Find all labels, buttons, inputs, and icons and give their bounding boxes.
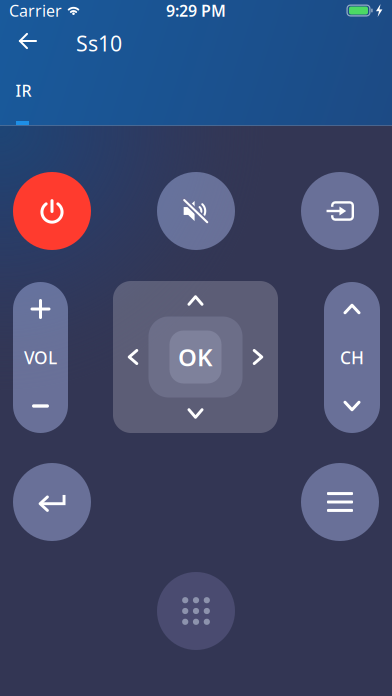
button[interactable]: Power: [13, 172, 91, 250]
staticText: OK: [178, 341, 213, 373]
staticText: Carrier: [9, 0, 62, 21]
button[interactable]: Number pad: [157, 572, 235, 650]
staticText: IR: [15, 80, 31, 101]
button[interactable]: Input source: [301, 172, 379, 250]
button[interactable]: IR: [0, 0, 46, 125]
button[interactable]: Down: [168, 394, 222, 432]
button[interactable]: Volume up: [13, 282, 68, 336]
button[interactable]: Channel down: [324, 379, 380, 433]
staticText: 9:29 PM: [166, 0, 226, 21]
button[interactable]: Menu: [301, 463, 379, 541]
button[interactable]: Back: [13, 463, 91, 541]
button[interactable]: Mute: [157, 172, 235, 250]
staticText: Ss10: [76, 29, 122, 57]
staticText: VOL: [24, 346, 57, 369]
button[interactable]: Left: [114, 330, 152, 384]
button[interactable]: Channel up: [324, 282, 380, 336]
button[interactable]: Up: [168, 281, 222, 319]
staticText: CH: [340, 346, 364, 369]
button[interactable]: Volume down: [13, 379, 68, 433]
button[interactable]: Right: [239, 330, 277, 384]
button[interactable]: Back: [8, 21, 48, 61]
